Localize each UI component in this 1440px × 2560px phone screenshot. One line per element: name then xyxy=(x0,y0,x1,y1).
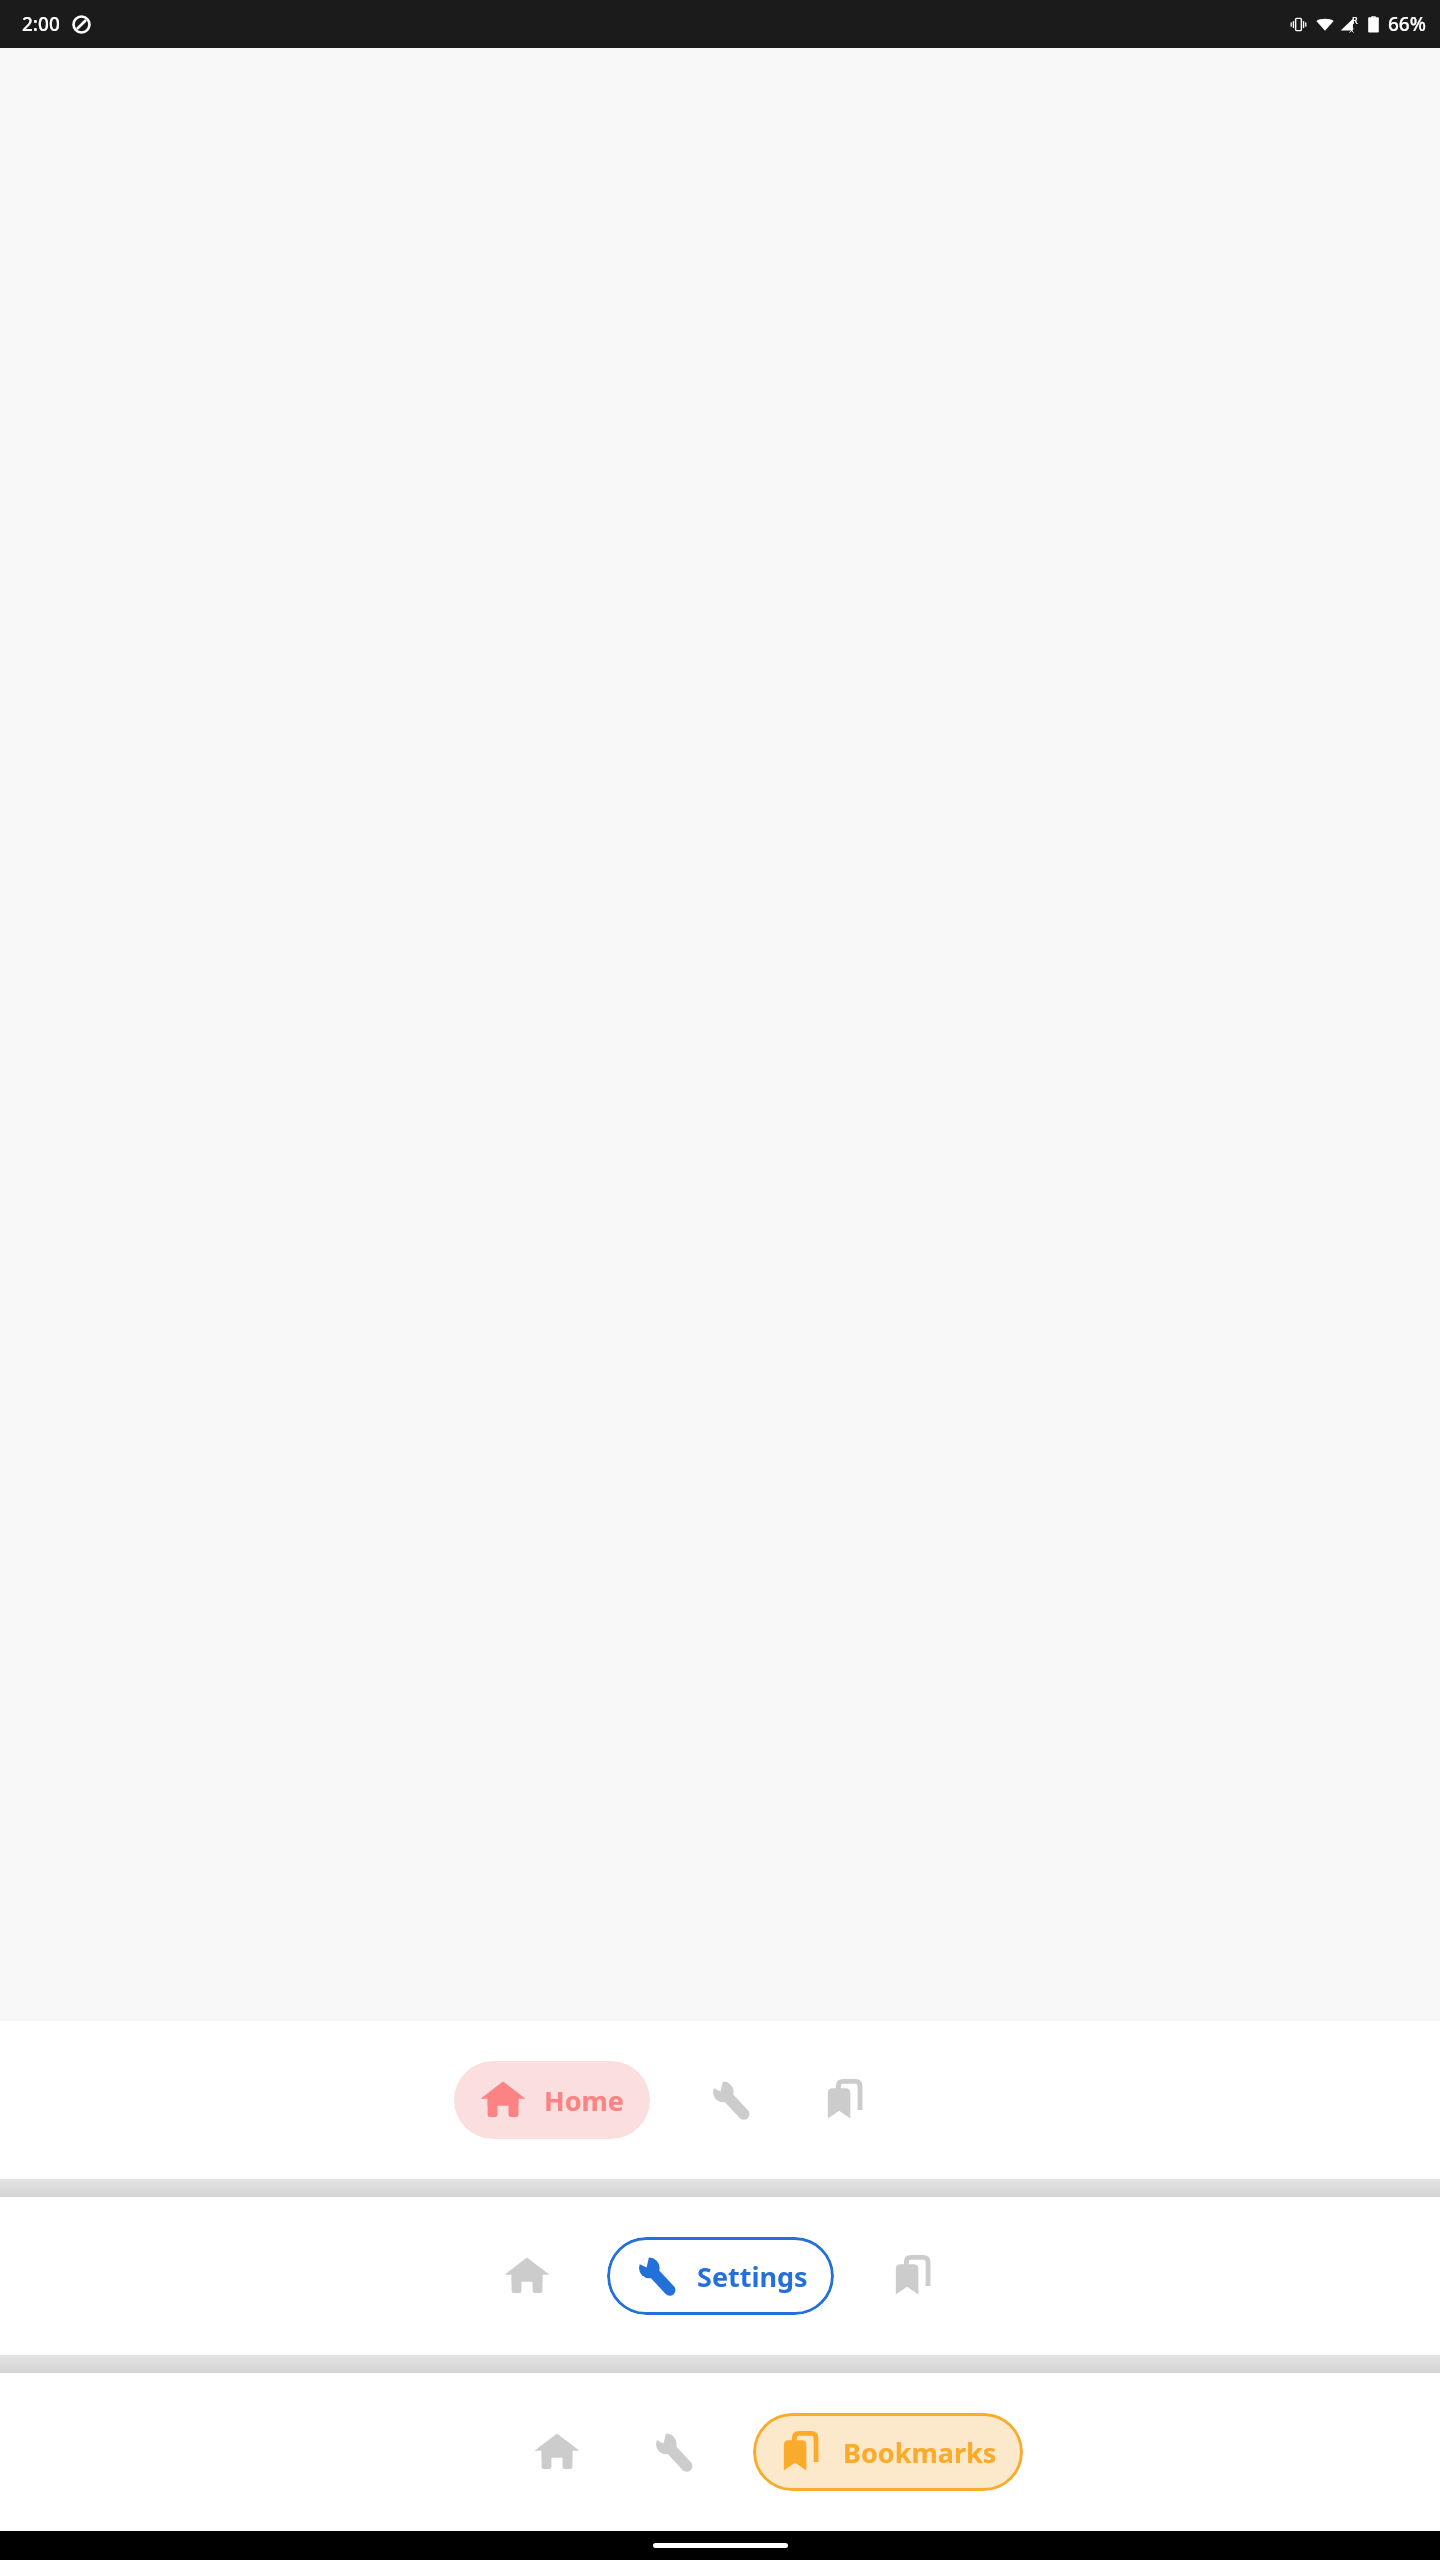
button[interactable]: Bookmarks xyxy=(753,2413,1023,2491)
button[interactable]: Home xyxy=(454,2061,650,2139)
button[interactable]: Bookmarks xyxy=(810,2064,882,2136)
staticText: 2:00 xyxy=(22,11,60,37)
button[interactable]: Settings xyxy=(694,2064,766,2136)
staticText: Home xyxy=(544,2082,624,2119)
staticText: Bookmarks xyxy=(843,2434,997,2471)
button[interactable]: Bookmarks xyxy=(878,2240,950,2312)
staticText: 66% xyxy=(1388,11,1426,37)
button[interactable]: Settings xyxy=(607,2237,834,2315)
staticText: Settings xyxy=(697,2258,808,2295)
button[interactable]: Settings xyxy=(637,2416,709,2488)
button[interactable]: Home xyxy=(491,2240,563,2312)
staticText: R xyxy=(1352,14,1358,26)
button[interactable]: Home xyxy=(521,2416,593,2488)
